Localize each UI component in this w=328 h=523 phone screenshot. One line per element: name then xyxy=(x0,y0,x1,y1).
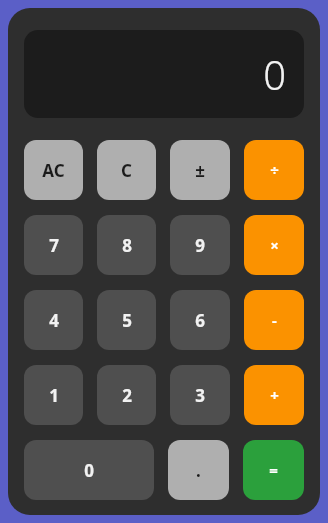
button[interactable]: × xyxy=(244,215,304,275)
staticText: + xyxy=(270,385,279,405)
staticText: C xyxy=(121,159,132,182)
button[interactable]: - xyxy=(244,290,304,350)
staticText: = xyxy=(269,460,278,480)
button[interactable]: ÷ xyxy=(244,140,304,200)
button[interactable]: . xyxy=(168,440,229,500)
staticText: 3 xyxy=(195,384,205,407)
staticText: 9 xyxy=(195,234,205,257)
staticText: 8 xyxy=(122,234,132,257)
button[interactable]: 6 xyxy=(170,290,230,350)
button[interactable]: 4 xyxy=(24,290,83,350)
button[interactable]: + xyxy=(244,365,304,425)
button[interactable]: 3 xyxy=(170,365,230,425)
button[interactable]: ± xyxy=(170,140,230,200)
staticText: 0 xyxy=(263,47,286,101)
staticText: AC xyxy=(42,159,65,182)
button[interactable]: 9 xyxy=(170,215,230,275)
staticText: 1 xyxy=(49,384,59,407)
button[interactable]: 0 xyxy=(24,440,154,500)
staticText: × xyxy=(270,235,279,255)
button[interactable]: C xyxy=(97,140,156,200)
staticText: ± xyxy=(195,159,205,182)
staticText: 0 xyxy=(84,459,94,482)
staticText: 7 xyxy=(49,234,59,257)
staticText: 5 xyxy=(122,309,132,332)
button[interactable]: 2 xyxy=(97,365,156,425)
staticText: - xyxy=(272,310,277,330)
button[interactable]: 8 xyxy=(97,215,156,275)
staticText: 6 xyxy=(195,309,205,332)
button[interactable]: 1 xyxy=(24,365,83,425)
button[interactable]: = xyxy=(243,440,304,500)
staticText: 2 xyxy=(122,384,132,407)
staticText: ÷ xyxy=(270,160,279,180)
staticText: . xyxy=(196,459,201,482)
staticText: 4 xyxy=(49,309,59,332)
button[interactable]: 7 xyxy=(24,215,83,275)
button[interactable]: AC xyxy=(24,140,83,200)
button[interactable]: 5 xyxy=(97,290,156,350)
